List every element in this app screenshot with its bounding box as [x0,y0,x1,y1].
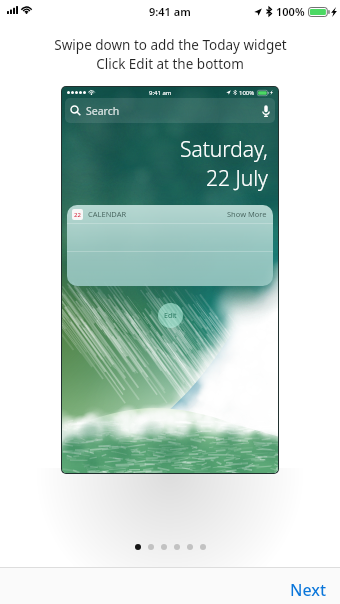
staticText: Next [290,579,327,597]
staticText: 22 [74,211,81,219]
staticText: Swipe down to add the Today widget [54,36,287,54]
staticText: 9:41 am [149,4,191,19]
button[interactable]: Next [277,568,340,604]
staticText: 9:41 am [149,89,172,97]
staticText: Search [86,104,120,118]
button[interactable]: Show More [227,209,267,219]
staticText: 100% [239,89,255,97]
staticText: 100% [276,4,305,19]
staticText: 22 July [206,164,268,193]
button[interactable]: Search [65,98,275,123]
button[interactable]: Edit [158,303,183,328]
staticText: CALENDAR [88,209,127,219]
staticText: Click Edit at the bottom [96,55,244,73]
staticText: Edit [164,311,177,321]
staticText: Show More [227,209,267,219]
staticText: Saturday, [180,135,268,164]
other: Dictate [262,105,270,117]
